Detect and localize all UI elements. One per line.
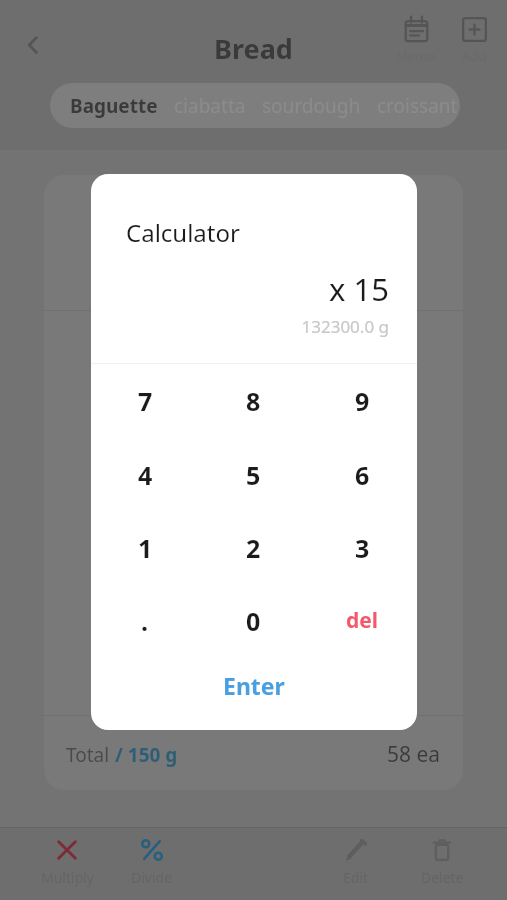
- button[interactable]: croissant: [377, 93, 458, 119]
- button[interactable]: del: [308, 584, 417, 657]
- staticText: .: [141, 604, 149, 638]
- button[interactable]: Baguette: [70, 93, 158, 119]
- staticText: 4: [138, 458, 153, 492]
- button[interactable]: Memo: [388, 14, 444, 67]
- staticText: Multiply: [41, 868, 94, 887]
- staticText: 8: [246, 384, 261, 418]
- button[interactable]: Enter: [91, 657, 417, 730]
- staticText: 6: [355, 458, 370, 492]
- button[interactable]: Delete: [402, 835, 482, 889]
- staticText: 58 ea: [387, 740, 441, 769]
- staticText: 132300.0 g: [91, 315, 389, 338]
- staticText: 0: [246, 604, 261, 638]
- button[interactable]: ciabatta: [174, 93, 246, 119]
- button[interactable]: 5: [199, 438, 308, 511]
- staticText: 5: [246, 458, 261, 492]
- button[interactable]: 9: [308, 364, 417, 438]
- staticText: x 15: [91, 268, 389, 310]
- button[interactable]: 2: [199, 511, 308, 584]
- staticText: 2: [246, 531, 261, 565]
- staticText: Total: [66, 742, 115, 768]
- button[interactable]: Back: [10, 22, 56, 68]
- staticText: 1: [138, 531, 153, 565]
- staticText: 9: [355, 384, 370, 418]
- button[interactable]: Multiply: [27, 835, 107, 889]
- button[interactable]: 3: [308, 511, 417, 584]
- staticText: Enter: [223, 670, 285, 701]
- button[interactable]: Divide: [112, 835, 192, 889]
- button[interactable]: 0: [199, 584, 308, 657]
- button[interactable]: .: [91, 584, 199, 657]
- staticText: 3: [355, 531, 370, 565]
- button[interactable]: 7: [91, 364, 199, 438]
- staticText: del: [346, 606, 379, 635]
- button[interactable]: 6: [308, 438, 417, 511]
- button[interactable]: 8: [199, 364, 308, 438]
- button[interactable]: Add: [448, 14, 500, 67]
- staticText: 7: [138, 384, 153, 418]
- button[interactable]: 1: [91, 511, 199, 584]
- staticText: Calculator: [126, 216, 240, 249]
- staticText: Bread: [0, 30, 507, 67]
- staticText: / 150 g: [115, 742, 178, 768]
- button[interactable]: 4: [91, 438, 199, 511]
- button[interactable]: sourdough: [262, 93, 361, 119]
